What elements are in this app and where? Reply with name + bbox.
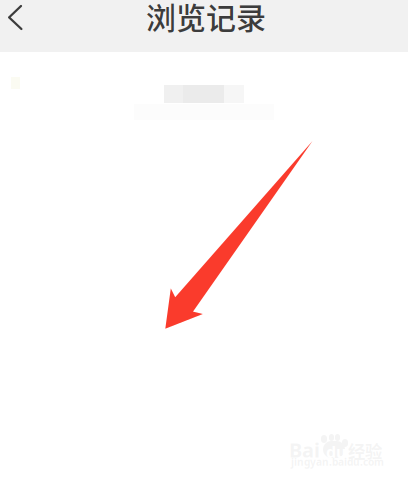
staticText: Bai: [289, 436, 320, 463]
staticText: 经验: [348, 438, 382, 463]
staticText: jingyan.baidu.com: [291, 455, 384, 469]
staticText: du: [326, 441, 346, 463]
staticText: 浏览记录: [146, 0, 266, 38]
button[interactable]: Back: [0, 0, 38, 34]
button[interactable]: [0, 53, 408, 111]
